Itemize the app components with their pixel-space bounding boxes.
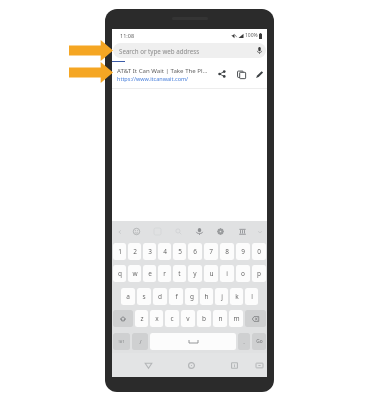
button[interactable]: Voice: [191, 221, 207, 242]
button[interactable]: Space: [150, 333, 236, 350]
button[interactable]: u: [204, 265, 218, 282]
button[interactable]: 7: [204, 243, 218, 260]
staticText: 6: [193, 247, 197, 256]
button[interactable]: Backspace: [245, 310, 266, 327]
button[interactable]: g: [185, 288, 198, 305]
staticText: v: [186, 314, 190, 323]
button[interactable]: 0: [252, 243, 266, 260]
staticText: AT&T It Can Wait | Take The Pl...: [117, 66, 208, 74]
staticText: a: [126, 292, 130, 301]
button[interactable]: f: [169, 288, 183, 305]
staticText: /: [139, 338, 142, 345]
button[interactable]: p: [252, 265, 266, 282]
button[interactable]: i: [220, 265, 234, 282]
button[interactable]: /: [132, 333, 148, 350]
button[interactable]: Copy: [232, 63, 250, 85]
staticText: c: [170, 314, 174, 323]
staticText: !#1: [118, 339, 125, 345]
button[interactable]: n: [213, 310, 227, 327]
button[interactable]: 6: [188, 243, 202, 260]
button[interactable]: Recents: [225, 353, 243, 377]
button[interactable]: 9: [236, 243, 250, 260]
button[interactable]: Settings: [212, 221, 228, 242]
staticText: h: [204, 292, 209, 301]
button[interactable]: w: [128, 265, 141, 282]
button[interactable]: x: [150, 310, 163, 327]
button[interactable]: s: [137, 288, 151, 305]
staticText: .: [243, 338, 245, 346]
button[interactable]: Search or type web address: [113, 43, 266, 58]
button[interactable]: Back: [139, 353, 157, 377]
button[interactable]: More: [252, 221, 268, 242]
button[interactable]: AT&T It Can Wait | Take The Pl...: [112, 61, 267, 86]
staticText: t: [178, 269, 181, 278]
staticText: 0: [257, 247, 261, 256]
staticText: q: [118, 269, 122, 278]
button[interactable]: !#1: [113, 333, 130, 350]
staticText: n: [218, 314, 223, 323]
staticText: w: [132, 269, 138, 278]
button[interactable]: b: [197, 310, 211, 327]
staticText: f: [175, 292, 178, 301]
staticText: 2: [133, 247, 137, 256]
staticText: 1: [118, 247, 122, 256]
button[interactable]: Clipboard: [234, 221, 250, 242]
staticText: p: [257, 269, 261, 278]
button[interactable]: 3: [143, 243, 156, 260]
staticText: x: [155, 314, 159, 323]
staticText: k: [235, 292, 239, 301]
button[interactable]: Go: [252, 333, 266, 350]
button[interactable]: a: [121, 288, 135, 305]
staticText: 100%: [245, 32, 258, 39]
staticText: o: [241, 269, 245, 278]
button[interactable]: j: [215, 288, 228, 305]
button[interactable]: v: [181, 310, 195, 327]
staticText: 9: [241, 247, 245, 256]
button[interactable]: Emoji: [128, 221, 144, 242]
staticText: i: [226, 269, 228, 278]
button[interactable]: Share: [213, 63, 231, 85]
staticText: 5: [178, 247, 182, 256]
button[interactable]: Shift: [113, 310, 133, 327]
button[interactable]: m: [229, 310, 243, 327]
staticText: e: [148, 269, 152, 278]
staticText: j: [221, 292, 223, 301]
button[interactable]: e: [143, 265, 156, 282]
button[interactable]: 4: [158, 243, 171, 260]
button[interactable]: 1: [113, 243, 126, 260]
staticText: Go: [256, 338, 263, 345]
button[interactable]: y: [188, 265, 202, 282]
button[interactable]: c: [165, 310, 179, 327]
button[interactable]: h: [200, 288, 213, 305]
staticText: 7: [209, 247, 213, 256]
button[interactable]: t: [173, 265, 186, 282]
button[interactable]: l: [245, 288, 258, 305]
staticText: 3: [148, 247, 152, 256]
button[interactable]: z: [135, 310, 148, 327]
button[interactable]: 2: [128, 243, 141, 260]
button[interactable]: 5: [173, 243, 186, 260]
staticText: y: [193, 269, 197, 278]
button[interactable]: r: [158, 265, 171, 282]
button[interactable]: o: [236, 265, 250, 282]
staticText: r: [163, 269, 166, 278]
button[interactable]: d: [153, 288, 167, 305]
button[interactable]: q: [113, 265, 126, 282]
staticText: 4: [163, 247, 167, 256]
button[interactable]: Home: [182, 353, 200, 377]
staticText: 8: [225, 247, 229, 256]
staticText: 11:08: [120, 32, 135, 39]
staticText: d: [158, 292, 162, 301]
button[interactable]: k: [230, 288, 243, 305]
staticText: g: [190, 292, 194, 301]
button[interactable]: Edit: [250, 63, 268, 85]
staticText: s: [142, 292, 146, 301]
staticText: https://www.itcanwait.com/: [117, 75, 189, 82]
button[interactable]: Hide keyboard: [250, 353, 268, 377]
staticText: m: [233, 314, 240, 323]
button[interactable]: 8: [220, 243, 234, 260]
